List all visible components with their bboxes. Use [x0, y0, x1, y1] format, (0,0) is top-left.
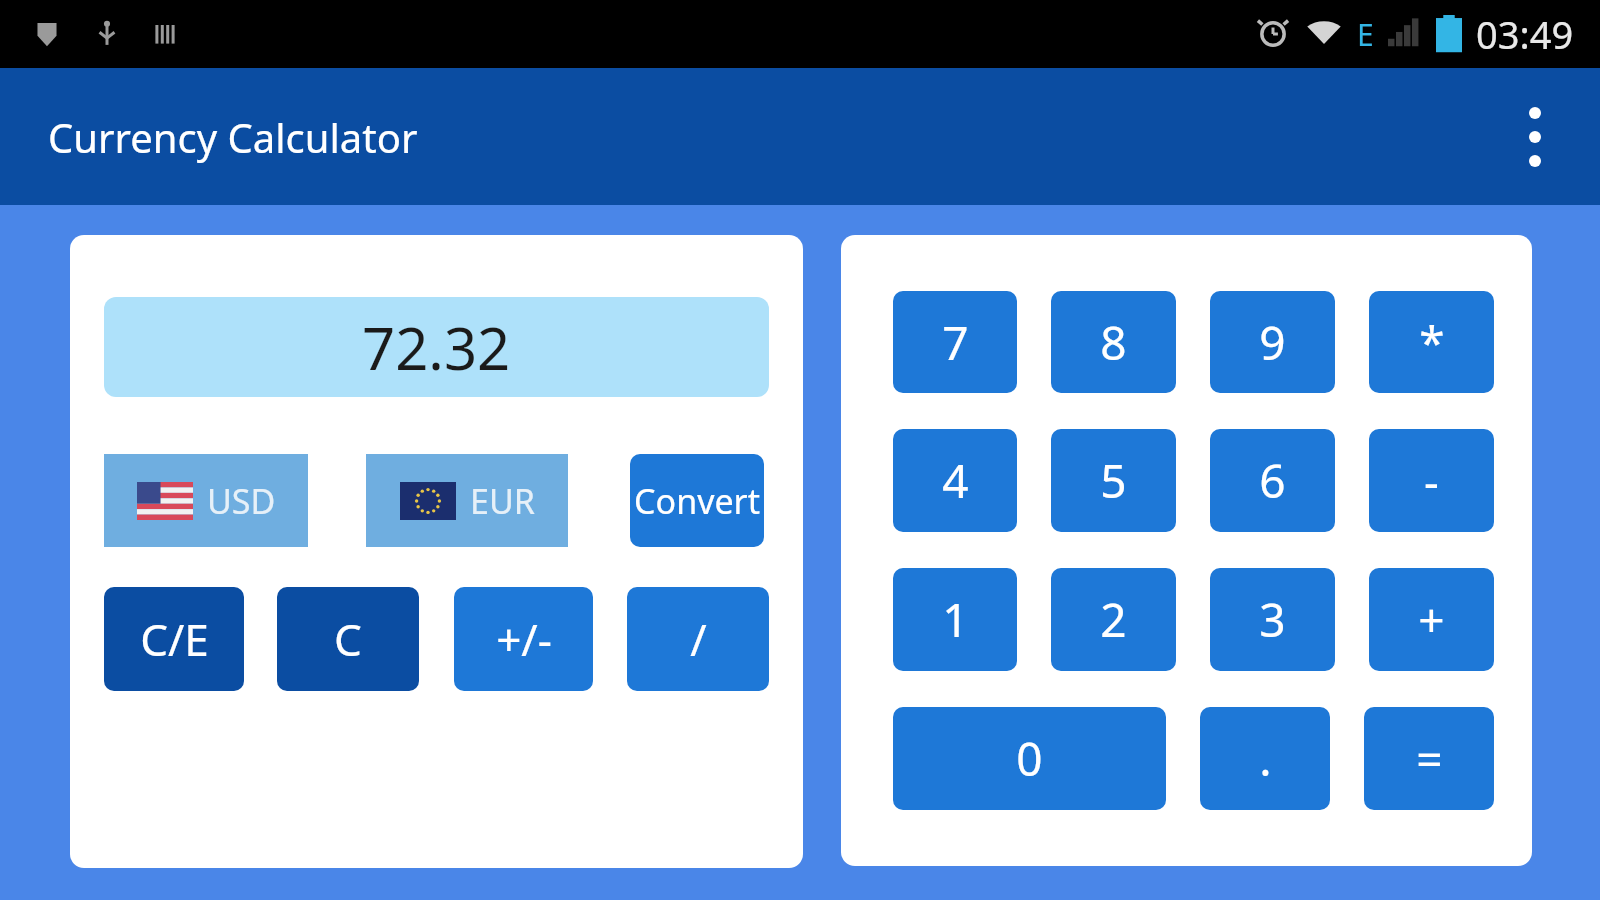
button[interactable]: EUR	[366, 454, 568, 547]
staticText: 2	[1100, 588, 1127, 651]
button[interactable]: *	[1369, 291, 1494, 393]
button[interactable]: -	[1369, 429, 1494, 532]
staticText: Currency Calculator	[48, 110, 418, 164]
button[interactable]: 72.32	[104, 297, 769, 397]
button[interactable]: 6	[1210, 429, 1335, 532]
staticText: /	[690, 609, 707, 669]
button[interactable]: 7	[893, 291, 1017, 393]
staticText: 9	[1259, 311, 1286, 374]
staticText: 4	[942, 449, 969, 512]
button[interactable]: 1	[893, 568, 1017, 671]
button[interactable]: .	[1200, 707, 1330, 810]
staticText: 0	[1016, 727, 1043, 790]
staticText: +	[1418, 588, 1445, 651]
button[interactable]: 8	[1051, 291, 1176, 393]
staticText: Convert	[634, 478, 760, 524]
button[interactable]: 3	[1210, 568, 1335, 671]
staticText: 3	[1259, 588, 1286, 651]
button[interactable]: 2	[1051, 568, 1176, 671]
staticText: EUR	[470, 478, 535, 524]
button[interactable]: +/-	[454, 587, 593, 691]
staticText: USD	[207, 478, 276, 524]
staticText: 03:49	[1476, 8, 1574, 60]
button[interactable]: +	[1369, 568, 1494, 671]
staticText: C/E	[140, 609, 209, 669]
button[interactable]: C/E	[104, 587, 244, 691]
button[interactable]: 5	[1051, 429, 1176, 532]
staticText: 7	[942, 311, 969, 374]
staticText: 72.32	[362, 308, 511, 387]
staticText: +/-	[496, 609, 552, 669]
staticText: 5	[1100, 449, 1127, 512]
staticText: 1	[942, 588, 969, 651]
staticText: E	[1357, 14, 1374, 55]
button[interactable]: 0	[893, 707, 1166, 810]
staticText: -	[1424, 449, 1439, 512]
button[interactable]: 4	[893, 429, 1017, 532]
button[interactable]: /	[627, 587, 769, 691]
staticText: C	[334, 609, 362, 669]
button[interactable]: Convert	[630, 454, 764, 547]
staticText: 8	[1100, 311, 1127, 374]
button[interactable]: More options	[1490, 92, 1580, 182]
button[interactable]: =	[1364, 707, 1494, 810]
staticText: *	[1419, 311, 1445, 374]
staticText: .	[1259, 727, 1272, 790]
button[interactable]: C	[277, 587, 419, 691]
button[interactable]: 9	[1210, 291, 1335, 393]
staticText: 6	[1259, 449, 1286, 512]
staticText: =	[1416, 727, 1443, 790]
button[interactable]: USD	[104, 454, 308, 547]
